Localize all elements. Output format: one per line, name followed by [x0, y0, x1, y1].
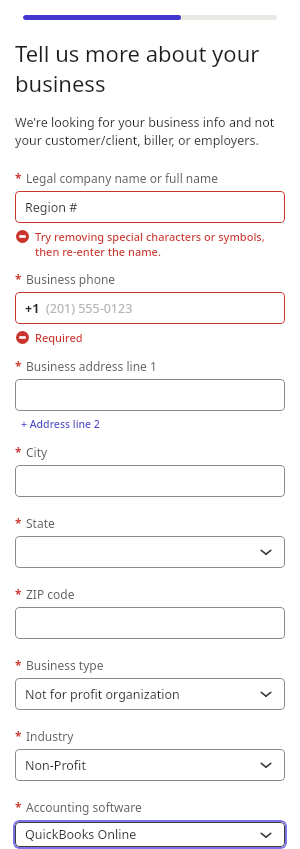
staticText: Tell us more about your business [15, 38, 285, 98]
other: Open dropdown [259, 545, 273, 559]
button[interactable]: QuickBooks Online [15, 822, 285, 847]
staticText: Business type [26, 657, 104, 673]
staticText: ZIP code [26, 586, 75, 602]
staticText: * [15, 444, 22, 460]
staticText: * [15, 586, 22, 602]
staticText: (201) 555-0123 [46, 300, 133, 317]
staticText: Region # [25, 199, 78, 216]
staticText: QuickBooks Online [25, 826, 137, 843]
staticText: Legal company name or full name [26, 170, 218, 186]
staticText: * [15, 728, 22, 744]
staticText: Not for profit organization [25, 686, 180, 703]
staticText: Non-Profit [25, 757, 86, 774]
staticText: Business phone [26, 271, 116, 287]
staticText: * [15, 657, 22, 673]
button[interactable] [15, 607, 285, 639]
other: Error [16, 331, 29, 344]
button[interactable]: Not for profit organization [15, 678, 285, 710]
staticText: * [15, 358, 22, 374]
other: Open dropdown [259, 828, 273, 842]
staticText: Required [35, 330, 83, 345]
staticText: Try removing special characters or symbo… [35, 229, 285, 259]
staticText: Accounting software [26, 799, 142, 815]
staticText: We're looking for your business info and… [15, 114, 285, 149]
staticText: Business address line 1 [26, 358, 157, 374]
button[interactable] [15, 379, 285, 411]
staticText: * [15, 799, 22, 815]
staticText: Industry [26, 728, 74, 744]
button[interactable]: + Address line 2 [15, 417, 100, 431]
staticText: City [26, 444, 48, 460]
button[interactable] [15, 465, 285, 497]
staticText: * [15, 271, 22, 287]
button[interactable]: Non-Profit [15, 749, 285, 781]
staticText: State [26, 515, 55, 531]
other: Open dropdown [259, 687, 273, 701]
button[interactable]: +1 [15, 292, 285, 324]
other: Open dropdown [259, 758, 273, 772]
staticText: * [15, 170, 22, 186]
button[interactable]: Region # [15, 191, 285, 223]
staticText: +1 [25, 300, 40, 317]
staticText: * [15, 515, 22, 531]
button[interactable]: Open dropdown [15, 536, 285, 568]
other: Error [16, 230, 29, 243]
staticText: + Address line 2 [21, 417, 100, 431]
